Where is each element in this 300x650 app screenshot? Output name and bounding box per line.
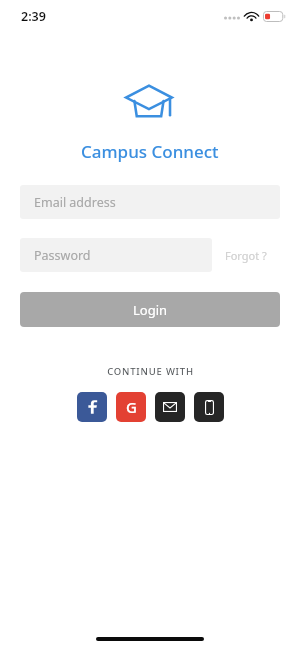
button[interactable]: Forgot ?: [212, 238, 280, 272]
staticText: Email address: [34, 194, 116, 211]
button[interactable]: Continue with Facebook: [77, 392, 107, 422]
staticText: 2:39: [21, 8, 46, 25]
button[interactable]: Continue with phone: [194, 392, 224, 422]
staticText: Campus Connect: [81, 140, 219, 163]
staticText: Forgot ?: [225, 248, 267, 263]
button[interactable]: Continue with Google: [116, 392, 146, 422]
button[interactable]: Login: [20, 292, 280, 327]
staticText: Password: [34, 247, 91, 264]
button[interactable]: Continue with email: [155, 392, 185, 422]
staticText: Login: [133, 301, 168, 319]
button[interactable]: Email address: [20, 185, 280, 219]
button[interactable]: Password: [20, 238, 212, 272]
staticText: CONTINUE WITH: [107, 365, 194, 378]
staticText: G: [126, 397, 137, 417]
